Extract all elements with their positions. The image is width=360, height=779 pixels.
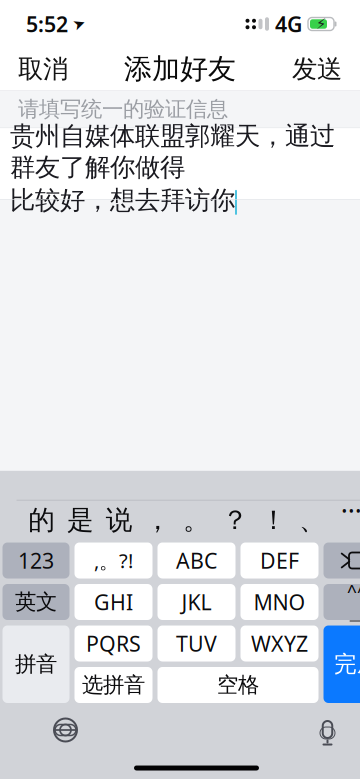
staticText: ➤ [73,16,85,32]
staticText: 说 [106,504,133,536]
staticText: 完成 [334,650,360,678]
button[interactable]: …… [332,500,360,539]
staticText: ， [144,504,171,536]
button[interactable]: 贵州自媒体联盟郭耀天，通过群友了解你做得 [0,128,360,199]
staticText: GHI [94,588,133,616]
staticText: × [358,547,360,573]
staticText: ABC [176,546,217,575]
staticText: …… [341,485,360,555]
staticText: 。 [183,504,210,536]
staticText: 英文 [15,589,57,615]
button[interactable]: 说 [100,500,138,539]
staticText: 取消 [18,53,68,84]
staticText: ,。?! [94,547,133,574]
staticText: PQRS [86,629,141,658]
button[interactable]: JKL [157,584,235,620]
staticText: 添加好友 [124,52,236,86]
staticText: 请填写统一的验证信息 [18,96,228,122]
staticText: 选拼音 [82,672,145,698]
button[interactable]: 123 [2,542,69,578]
button[interactable]: WXYZ [240,625,318,661]
button[interactable]: 发送 [283,45,351,92]
staticText: 贵州自媒体联盟郭耀天，通过群友了解你做得 [10,120,335,183]
button[interactable]: DEF [240,542,318,578]
staticText: 比较好，想去拜访你 [10,185,235,216]
button[interactable]: 完成 [323,625,360,703]
staticText: 5:52 [26,10,68,38]
button[interactable]: 颜文字 [323,584,360,620]
button[interactable]: ， [138,500,177,539]
button[interactable]: 语音输入 [300,709,354,751]
button[interactable]: PQRS [74,625,152,661]
staticText: 发送 [292,53,342,84]
button[interactable]: 是 [61,500,100,539]
button[interactable]: ,。?! [74,542,152,578]
button[interactable]: 英文 [2,584,69,620]
button[interactable]: TUV [157,625,235,661]
staticText: JKL [181,588,211,616]
button[interactable]: 拼音 [2,625,69,703]
staticText: TUV [176,629,217,658]
staticText: ^^ ＿ [347,580,360,624]
button[interactable]: MNO [240,584,318,620]
staticText: 4G [275,10,302,38]
button[interactable]: 。 [177,500,216,539]
staticText: ！ [260,504,287,536]
button[interactable]: 选拼音 [74,667,152,703]
staticText: MNO [253,588,305,616]
staticText: ？ [222,504,249,536]
staticText: 是 [67,504,94,536]
staticText: 空格 [217,672,259,698]
button[interactable]: ABC [157,542,235,578]
staticText: 123 [18,546,54,575]
staticText: 的 [28,504,55,536]
button[interactable]: 空格 [157,667,318,703]
button[interactable]: 取消 [9,45,77,92]
button[interactable]: 删除 [323,542,360,578]
button[interactable]: 切换键盘 [38,709,92,751]
staticText: ⚡︎ [316,16,326,32]
staticText: WXYZ [251,629,308,658]
staticText: 、 [299,504,326,536]
staticText: 拼音 [15,651,57,677]
button[interactable]: 的 [22,500,61,539]
staticText: DEF [260,546,299,575]
button[interactable]: GHI [74,584,152,620]
button[interactable]: ！ [254,500,293,539]
button[interactable]: ？ [216,500,254,539]
button[interactable]: 、 [293,500,332,539]
